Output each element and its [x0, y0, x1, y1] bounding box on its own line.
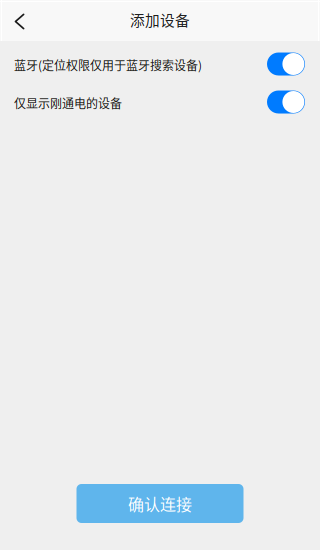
button[interactable]: Back [0, 0, 37, 41]
staticText: 仅显示刚通电的设备 [14, 94, 122, 111]
button[interactable]: 蓝牙(定位权限仅用于蓝牙搜索设备) [0, 46, 320, 84]
button[interactable]: 确认连接 [76, 484, 243, 523]
staticText: 确认连接 [128, 492, 192, 515]
button[interactable]: 仅显示刚通电的设备 [0, 84, 320, 122]
staticText: 添加设备 [130, 9, 190, 30]
staticText: 蓝牙(定位权限仅用于蓝牙搜索设备) [14, 56, 202, 73]
